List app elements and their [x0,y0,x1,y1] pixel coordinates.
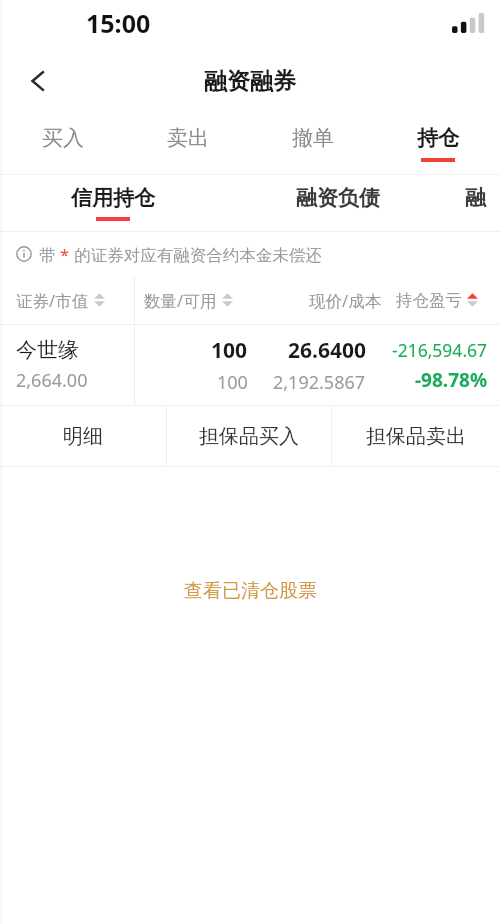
staticText: 2,664.00 [16,368,88,393]
staticText: 100 [217,370,248,395]
staticText: 卖出 [167,125,209,151]
button[interactable]: Back [10,53,66,109]
button[interactable]: 融 [450,175,500,231]
button[interactable]: 卖出 [125,112,250,174]
staticText: 信用持仓 [71,185,155,211]
staticText: -98.78% [415,367,488,393]
staticText: 明细 [63,424,103,449]
staticText: -216,594.67 [392,338,488,362]
staticText: 融 [465,185,486,211]
button[interactable]: 担保品卖出 [332,406,500,466]
staticText: 担保品买入 [199,424,299,449]
staticText: 现价/成本 [309,289,382,312]
staticText: 持仓 [417,125,459,151]
staticText: 查看已清仓股票 [184,579,317,603]
staticText: 100 [211,336,248,365]
staticText: 数量/可用 [144,289,217,312]
staticText: 证券/市值 [16,289,89,312]
button[interactable]: 证券/市值 [0,276,134,324]
staticText: 融资融券 [204,67,296,96]
button[interactable]: 买入 [0,112,125,174]
button[interactable]: 数量/可用 [134,276,266,324]
button[interactable]: 现价/成本 [266,276,382,324]
button[interactable]: 查看已清仓股票 [168,573,333,609]
button[interactable]: 持仓 [375,112,500,174]
staticText: 的证券对应有融资合约本金未偿还 [70,243,322,266]
button[interactable]: 撤单 [250,112,375,174]
staticText: 今世缘 [16,337,79,363]
staticText: 2,192.5867 [273,370,366,395]
staticText: 持仓盈亏 [396,290,462,311]
button[interactable]: 信用持仓 [0,175,225,231]
staticText: 买入 [42,125,84,151]
staticText: 融资负债 [296,185,380,211]
staticText: 15:00 [86,6,151,40]
button[interactable]: 担保品买入 [167,406,331,466]
staticText: * [60,243,70,265]
staticText: 撤单 [292,125,334,151]
button[interactable]: 持仓盈亏 [382,276,500,324]
button[interactable]: 今世缘 [0,325,500,405]
button[interactable]: 融资负债 [225,175,450,231]
button[interactable]: 明细 [0,406,166,466]
staticText: 带 [39,243,60,266]
staticText: 担保品卖出 [366,424,466,449]
staticText: 26.6400 [288,336,366,365]
